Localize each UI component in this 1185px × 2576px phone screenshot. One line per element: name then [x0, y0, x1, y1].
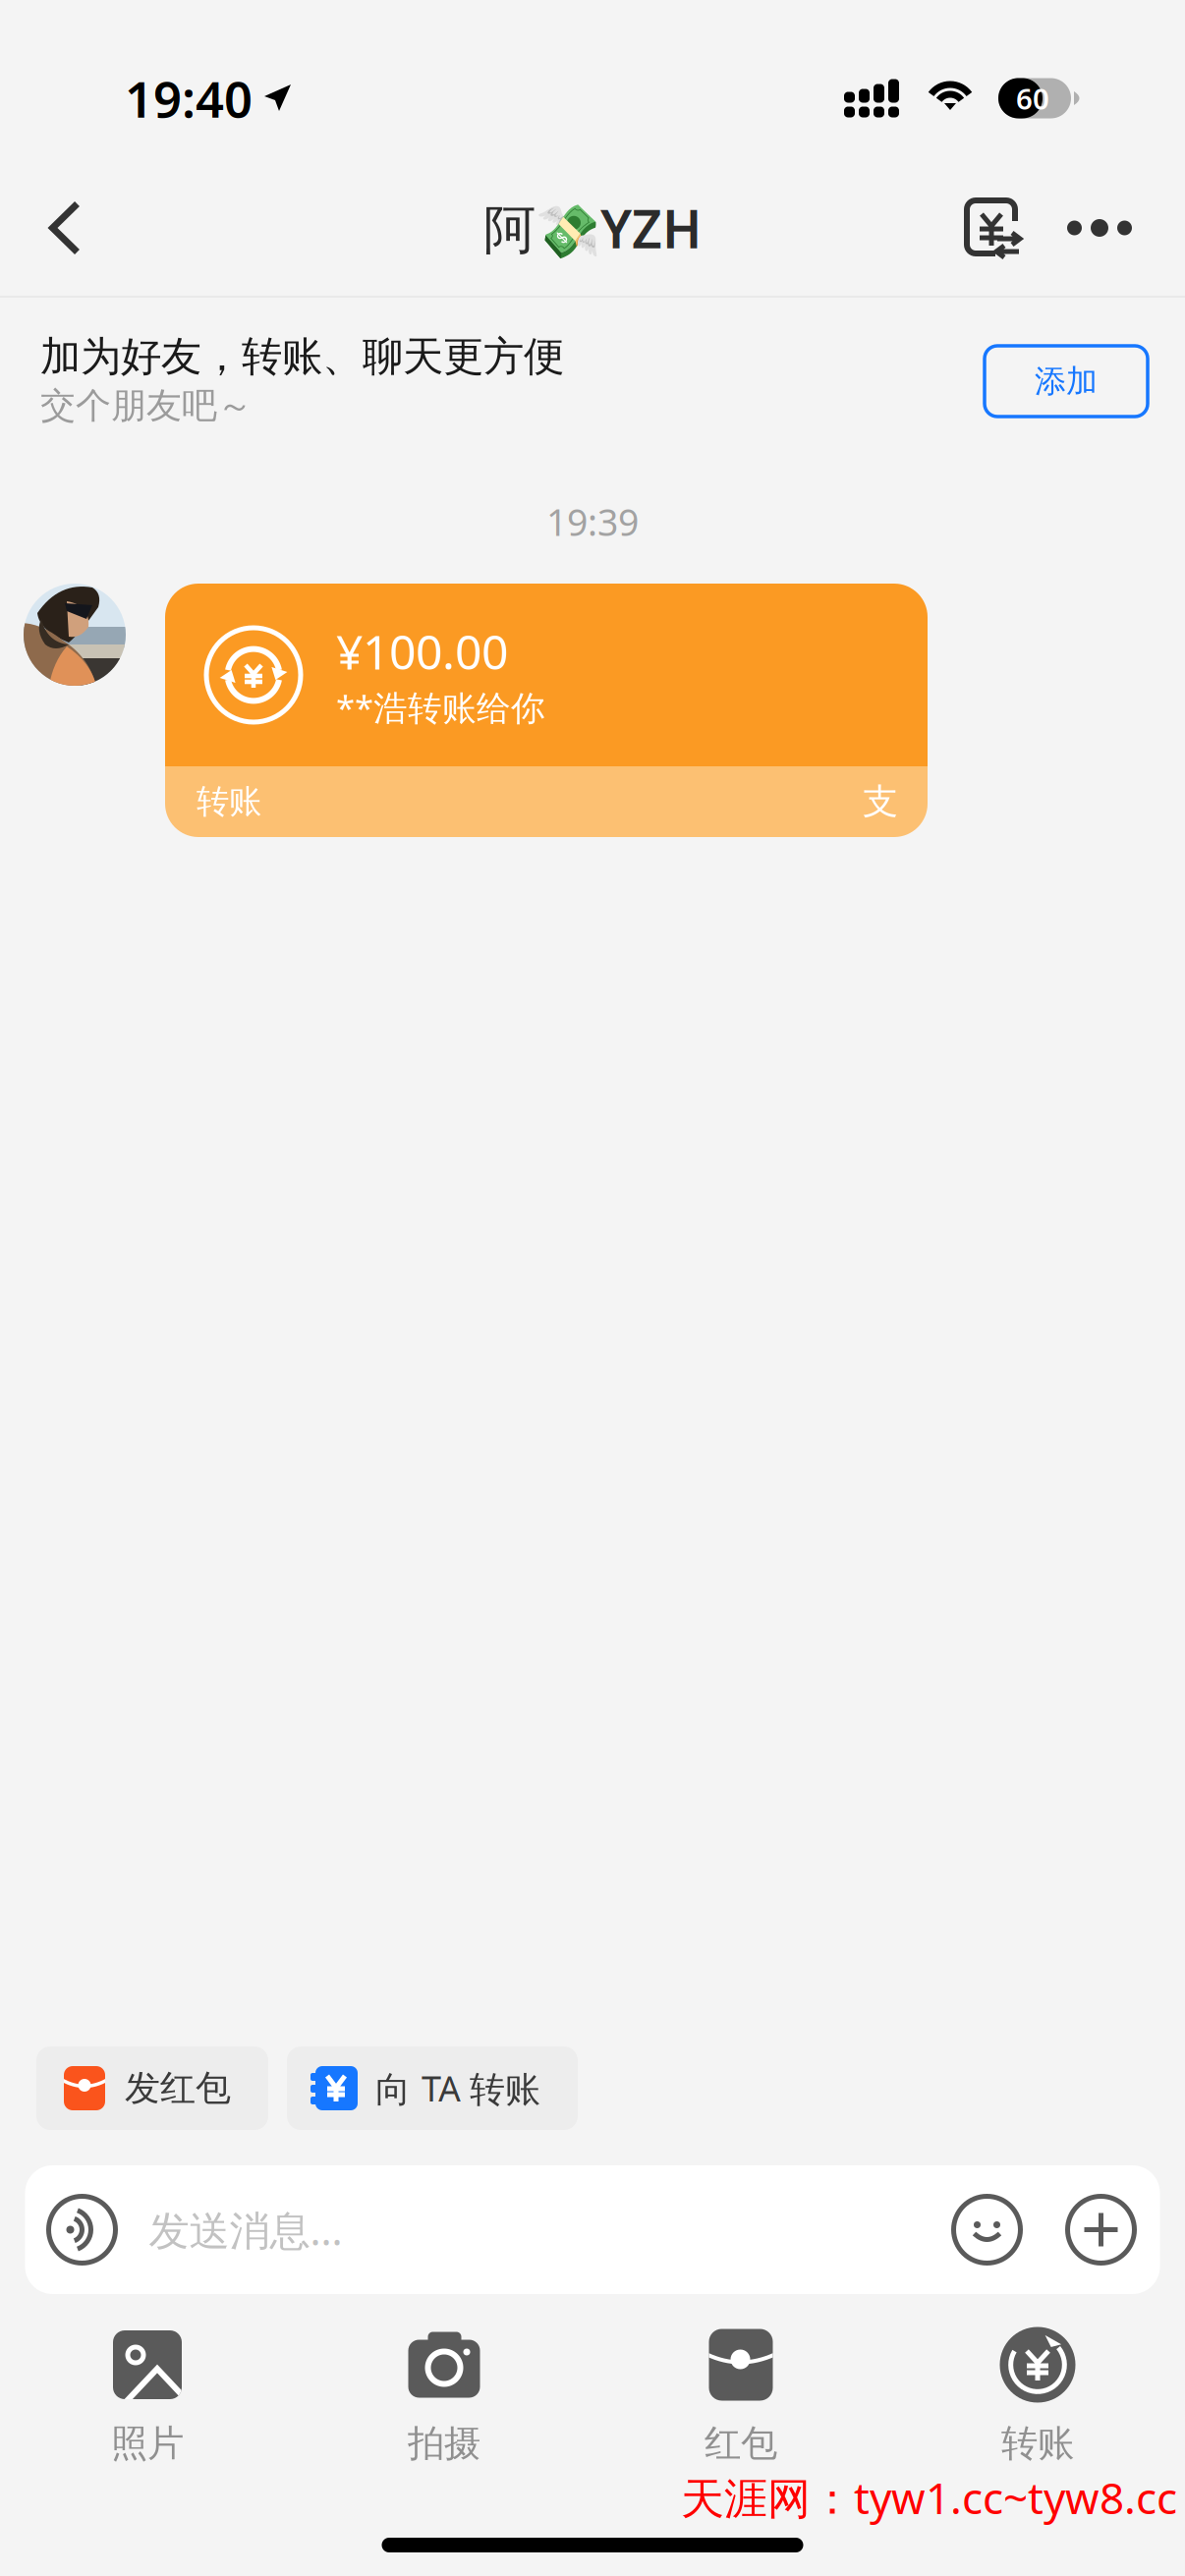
button[interactable]: 发红包 — [36, 2046, 268, 2130]
button[interactable]: 向 TA 转账 — [287, 2046, 578, 2130]
staticText: 添加 — [1035, 362, 1098, 400]
button[interactable]: 拍摄 — [296, 2330, 592, 2464]
button[interactable]: 照片 — [0, 2330, 296, 2464]
staticText: 照片 — [111, 2421, 184, 2466]
staticText: 红包 — [705, 2421, 777, 2466]
staticText: 拍摄 — [408, 2421, 480, 2466]
staticText: 阿💸YZH — [483, 193, 702, 263]
staticText: 19:40 — [125, 65, 253, 131]
staticText: 支 — [863, 780, 898, 823]
button[interactable]: Transfer record — [953, 183, 1036, 273]
staticText: 向 TA 转账 — [375, 2065, 540, 2112]
button[interactable]: Back — [49, 183, 134, 273]
button[interactable]: More options — [1068, 2196, 1134, 2263]
button[interactable]: Emoji — [954, 2196, 1020, 2263]
button[interactable]: 转账 — [889, 2330, 1185, 2464]
staticText: 天涯网：tyw1.cc~tyw8.cc — [681, 2469, 1177, 2526]
staticText: **浩转账给你 — [336, 685, 545, 730]
staticText: 转账 — [197, 782, 261, 822]
button[interactable]: 添加 — [985, 341, 1148, 412]
staticText: 发送消息... — [149, 2203, 342, 2257]
staticText: 交个朋友吧～ — [40, 384, 253, 427]
staticText: 19:39 — [546, 497, 639, 546]
button[interactable]: More — [1064, 183, 1135, 273]
staticText: 加为好友，转账、聊天更方便 — [40, 332, 564, 382]
staticText: ¥100.00 — [336, 620, 508, 683]
staticText: 发红包 — [125, 2066, 231, 2110]
staticText: 转账 — [1001, 2421, 1074, 2466]
staticText: 60 — [1016, 79, 1049, 117]
button[interactable]: 红包 — [592, 2330, 889, 2464]
button[interactable]: Hold to talk — [49, 2196, 115, 2263]
